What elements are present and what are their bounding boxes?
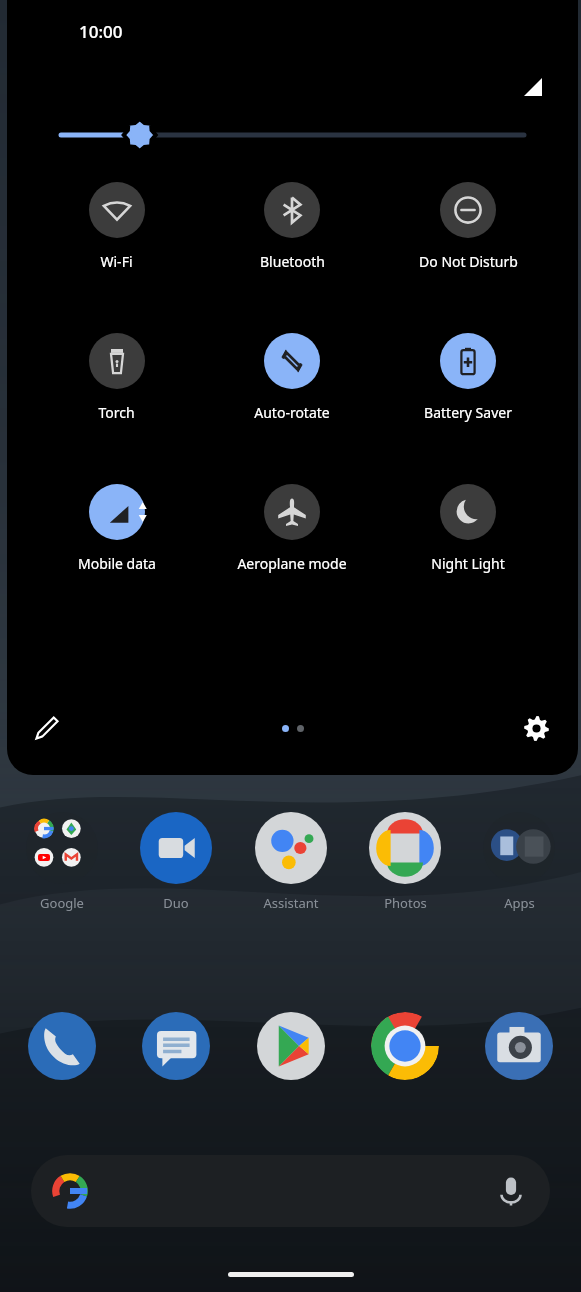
button[interactable]: Phone [16,1000,108,1092]
staticText: Aeroplane mode [237,554,347,573]
button[interactable]: Torch [29,333,204,422]
staticText: Photos [384,894,427,912]
button[interactable]: Aeroplane mode [204,484,380,573]
button[interactable]: Voice search [494,1174,528,1208]
button[interactable]: Battery Saver [380,333,556,422]
button[interactable]: Bluetooth [204,182,380,271]
button[interactable]: Voice search [31,1155,550,1227]
button[interactable]: Duo [130,812,222,912]
staticText: 10:00 [79,20,123,43]
button[interactable]: Do Not Disturb [380,182,556,271]
staticText: Night Light [431,554,505,573]
staticText: Do Not Disturb [419,252,518,271]
staticText: Bluetooth [260,252,325,271]
staticText: Torch [98,403,135,422]
button[interactable]: Settings [514,706,558,750]
staticText: Battery Saver [424,403,512,422]
staticText: Assistant [263,894,319,912]
button[interactable]: Chrome [359,1000,451,1092]
button[interactable]: Photos [359,812,451,912]
button[interactable]: Assistant [245,812,337,912]
button[interactable]: Mobile data [29,484,204,573]
staticText: Auto-rotate [254,403,330,422]
button[interactable]: Edit tiles [25,706,69,750]
staticText: Mobile data [78,554,156,573]
button[interactable]: Camera [473,1000,565,1092]
button[interactable]: Night Light [380,484,556,573]
button[interactable]: Google [16,812,108,912]
button[interactable]: Apps [473,812,565,912]
button[interactable]: Play Store [245,1000,337,1092]
staticText: Google [40,894,84,912]
button[interactable]: Brightness [61,112,524,158]
button[interactable]: Wi-Fi [29,182,204,271]
button[interactable]: Auto-rotate [204,333,380,422]
staticText: Wi-Fi [100,252,133,271]
staticText: Duo [163,894,189,912]
button[interactable]: Messages [130,1000,222,1092]
staticText: Apps [504,894,535,912]
